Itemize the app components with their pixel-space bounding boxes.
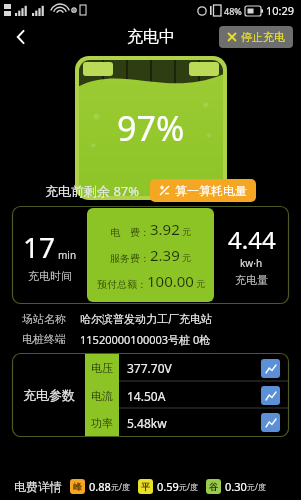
staticText: 10:29 — [266, 3, 295, 18]
staticText: 11520000100003号桩 0枪 — [80, 332, 211, 347]
staticText: min — [58, 248, 77, 262]
staticText: 0.59 — [157, 479, 179, 494]
staticText: 充电参数 — [23, 387, 75, 403]
staticText: 峰 — [73, 481, 82, 492]
staticText: 元/度 — [247, 481, 266, 492]
staticText: 元 — [182, 252, 191, 263]
staticText: 17 — [23, 228, 56, 266]
staticText: 5.48kw — [127, 415, 261, 431]
staticText: 充电中 — [127, 27, 175, 47]
staticText: 377.70V — [127, 360, 261, 376]
staticText: 充电时间 — [28, 269, 72, 283]
staticText: 元 — [196, 278, 205, 289]
staticText: 电费详情 — [14, 479, 62, 494]
button[interactable]: 算一算耗电量 — [150, 179, 256, 202]
staticText: 平 — [141, 481, 150, 492]
staticText: 算一算耗电量 — [175, 183, 247, 198]
staticText: 充电前剩余 87% — [45, 182, 140, 200]
button[interactable]: 查看曲线 — [261, 386, 280, 405]
staticText: 预付总额： — [97, 278, 147, 291]
staticText: 服务费： — [110, 252, 150, 265]
staticText: 2.39 — [150, 245, 180, 265]
staticText: 哈尔滨普发动力工厂充电站 — [80, 312, 212, 326]
button[interactable]: 查看曲线 — [261, 359, 280, 378]
staticText: 停止充电 — [241, 30, 285, 44]
staticText: 14.50A — [127, 388, 261, 404]
staticText: 元 — [182, 226, 191, 237]
staticText: 电桩终端 — [22, 332, 66, 346]
staticText: 谷 — [209, 481, 218, 492]
staticText: 0.88 — [89, 479, 111, 494]
button[interactable]: 停止充电 — [219, 26, 293, 48]
staticText: kw·h — [240, 256, 263, 270]
button[interactable]: 查看曲线 — [261, 413, 280, 432]
staticText: 3.92 — [150, 219, 180, 239]
staticText: 功率 — [91, 416, 113, 430]
staticText: 元/度 — [111, 481, 130, 492]
staticText: 元/度 — [179, 481, 198, 492]
staticText: 97% — [117, 105, 185, 151]
button[interactable]: 返回 — [4, 20, 38, 54]
staticText: 4.44 — [228, 223, 276, 256]
staticText: 电压 — [91, 361, 113, 375]
staticText: 场站名称 — [22, 312, 66, 326]
staticText: 电流 — [91, 389, 113, 403]
staticText: 0.30 — [225, 479, 247, 494]
staticText: 电 费： — [110, 225, 150, 239]
staticText: 48% — [224, 5, 242, 17]
staticText: 充电量 — [235, 273, 268, 287]
staticText: 100.00 — [147, 271, 194, 291]
